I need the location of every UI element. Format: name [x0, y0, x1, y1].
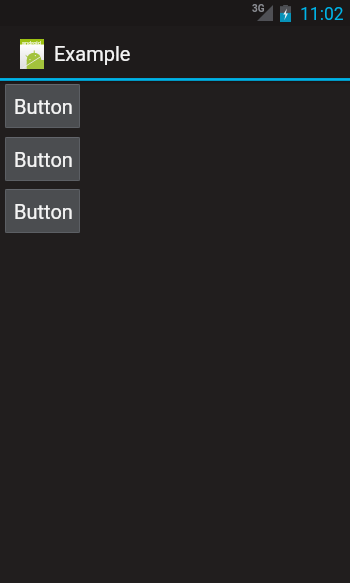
staticText: Button [14, 148, 73, 171]
button[interactable]: Button [5, 189, 80, 233]
staticText: Button [14, 95, 73, 118]
staticText: android [22, 40, 41, 47]
button[interactable]: Button [5, 137, 80, 181]
staticText: 3G [252, 3, 265, 15]
staticText: Button [14, 200, 73, 223]
staticText: 11:02 [300, 4, 344, 25]
staticText: Example [54, 42, 131, 65]
button[interactable]: Button [5, 84, 80, 128]
